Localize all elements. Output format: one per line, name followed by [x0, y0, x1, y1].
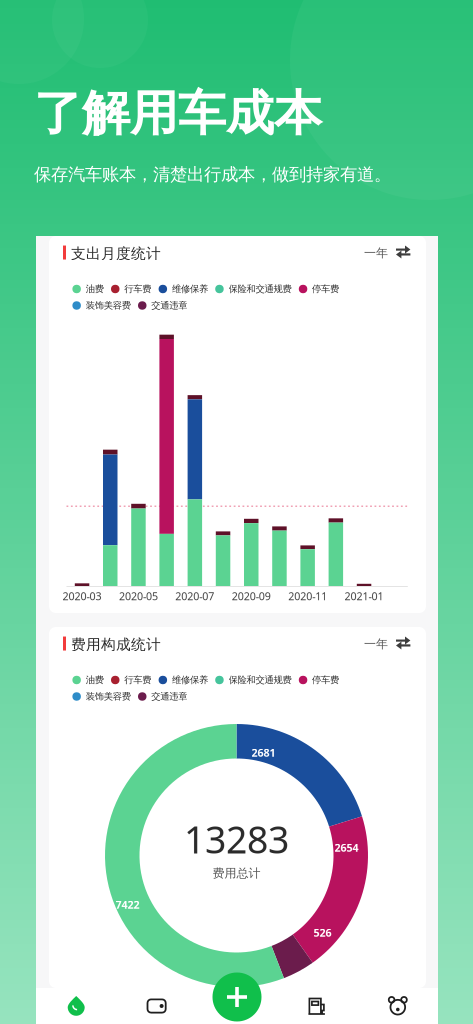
staticText: 行车费: [124, 674, 151, 686]
button[interactable]: 我的: [358, 988, 438, 1024]
staticText: 2020-11: [288, 589, 327, 603]
staticText: 了解用车成本: [34, 84, 322, 143]
button[interactable]: 账本: [116, 988, 197, 1024]
staticText: 油费: [86, 283, 104, 295]
staticText: 保存汽车账本，清楚出行成本，做到持家有道。: [34, 164, 391, 185]
button[interactable]: 一年: [364, 636, 410, 652]
staticText: 油费: [86, 674, 104, 686]
staticText: 2020-03: [62, 589, 101, 603]
staticText: 停车费: [312, 283, 339, 295]
staticText: 停车费: [312, 674, 339, 686]
staticText: 7422: [115, 897, 139, 912]
staticText: 维修保养: [172, 674, 208, 686]
button[interactable]: 一年: [364, 245, 410, 261]
staticText: 2681: [251, 745, 275, 760]
staticText: 2021-01: [345, 589, 384, 603]
staticText: 保险和交通规费: [228, 674, 291, 686]
staticText: 一年: [364, 246, 388, 260]
staticText: 费用构成统计: [71, 635, 161, 653]
button[interactable]: 加油站: [277, 988, 358, 1024]
staticText: 维修保养: [172, 283, 208, 295]
staticText: 2020-07: [175, 589, 214, 603]
staticText: 一年: [364, 637, 388, 651]
staticText: 2020-09: [232, 589, 271, 603]
staticText: 费用总计: [212, 866, 260, 881]
staticText: 2654: [334, 840, 358, 855]
staticText: 交通违章: [151, 300, 187, 311]
staticText: 保险和交通规费: [228, 283, 291, 295]
staticText: 2020-05: [119, 589, 158, 603]
staticText: 交通违章: [151, 691, 187, 702]
button[interactable]: 添加: [212, 972, 261, 1021]
staticText: 13283: [184, 814, 289, 864]
staticText: 支出月度统计: [71, 244, 161, 262]
staticText: 装饰美容费: [86, 300, 131, 311]
button[interactable]: 加油: [36, 988, 116, 1024]
staticText: 装饰美容费: [86, 691, 131, 702]
staticText: 526: [313, 925, 331, 940]
staticText: 行车费: [124, 283, 151, 295]
